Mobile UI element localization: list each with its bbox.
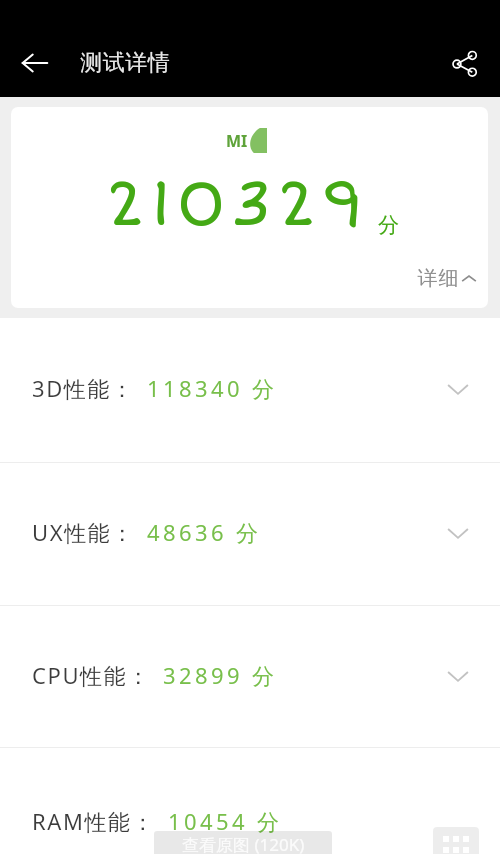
staticText: 查看原图 (120K)	[182, 833, 305, 854]
button[interactable]: 查看原图 (120K)	[154, 831, 332, 854]
button[interactable]: Back	[11, 39, 59, 87]
button[interactable]: 详细	[417, 266, 478, 291]
button[interactable]: RAM性能：	[0, 748, 500, 854]
staticText: 32899 分	[163, 660, 278, 690]
staticText: 48636 分	[147, 517, 262, 547]
staticText: 210329	[105, 164, 369, 244]
staticText: 118340 分	[147, 373, 278, 403]
button[interactable]: Grid	[433, 827, 479, 854]
staticText: MI	[226, 130, 248, 152]
staticText: 3D性能：	[32, 373, 135, 403]
staticText: 分	[378, 212, 399, 238]
button[interactable]: CPU性能：	[0, 606, 500, 747]
staticText: 测试详情	[80, 49, 170, 77]
staticText: UX性能：	[32, 517, 135, 547]
button[interactable]: 3D性能：	[0, 318, 500, 462]
button[interactable]: Share	[442, 41, 486, 85]
staticText: 10454 分	[168, 806, 283, 836]
button[interactable]: UX性能：	[0, 463, 500, 605]
button[interactable]: MI	[11, 107, 488, 308]
staticText: 详细	[417, 266, 459, 291]
staticText: CPU性能：	[32, 660, 151, 690]
staticText: RAM性能：	[32, 806, 156, 836]
